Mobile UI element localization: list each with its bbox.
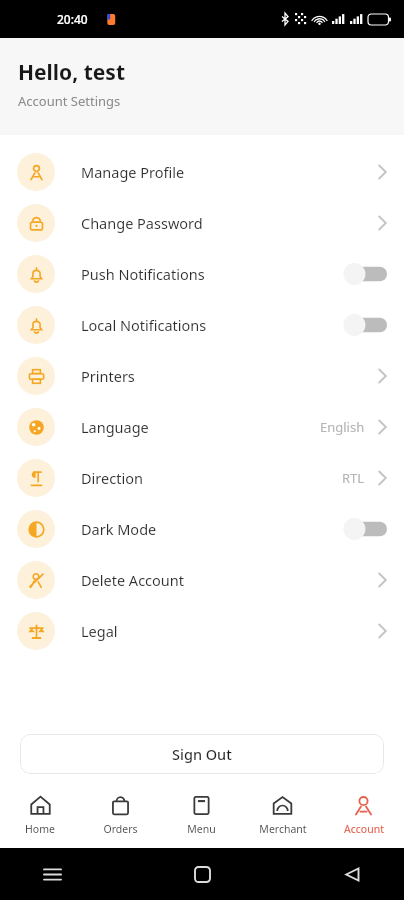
staticText: English — [320, 418, 365, 436]
staticText: Account Settings — [18, 92, 121, 110]
staticText: Direction — [81, 468, 143, 488]
staticText: Change Password — [81, 213, 203, 233]
button[interactable]: Dark Mode — [0, 503, 404, 554]
button[interactable]: Local Notifications — [0, 299, 404, 350]
button[interactable]: Merchant — [242, 783, 323, 848]
staticText: Language — [81, 417, 149, 437]
button[interactable]: Back — [334, 856, 370, 892]
staticText: Push Notifications — [81, 264, 205, 284]
button[interactable]: Home — [0, 783, 80, 848]
staticText: Dark Mode — [81, 519, 157, 539]
button[interactable]: Menu — [161, 783, 242, 848]
staticText: Home — [25, 822, 55, 836]
staticText: Menu — [187, 822, 216, 836]
button[interactable]: Push Notifications — [0, 248, 404, 299]
staticText: 20:40 — [57, 11, 88, 27]
staticText: Account — [344, 822, 384, 836]
button[interactable]: Direction — [0, 452, 404, 503]
button[interactable]: Change Password — [0, 197, 404, 248]
button[interactable]: Account — [323, 783, 404, 848]
button[interactable]: Legal — [0, 605, 404, 656]
staticText: Printers — [81, 366, 135, 386]
staticText: RTL — [342, 469, 365, 487]
staticText: Hello, test — [18, 58, 125, 87]
button[interactable]: Recent apps — [34, 856, 70, 892]
staticText: Sign Out — [172, 744, 232, 764]
staticText: Legal — [81, 621, 118, 641]
staticText: Delete Account — [81, 570, 184, 590]
staticText: Orders — [103, 822, 138, 836]
staticText: Manage Profile — [81, 162, 185, 182]
button[interactable]: Language — [0, 401, 404, 452]
button[interactable]: Home — [184, 856, 220, 892]
button[interactable]: Sign Out — [20, 734, 384, 774]
button[interactable]: Manage Profile — [0, 146, 404, 197]
staticText: Local Notifications — [81, 315, 207, 335]
button[interactable]: Delete Account — [0, 554, 404, 605]
button[interactable]: Printers — [0, 350, 404, 401]
staticText: Merchant — [259, 822, 307, 836]
button[interactable]: Orders — [80, 783, 161, 848]
